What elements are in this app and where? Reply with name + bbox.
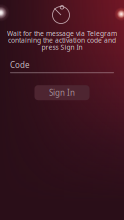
button[interactable]: Sign In <box>34 85 89 100</box>
staticText: Sign In <box>49 87 75 98</box>
staticText: Code <box>10 60 30 70</box>
staticText: containing the activation code and <box>8 36 116 45</box>
staticText: press Sign In <box>41 43 82 52</box>
staticText: Wait for the message via Telegram <box>7 29 117 38</box>
